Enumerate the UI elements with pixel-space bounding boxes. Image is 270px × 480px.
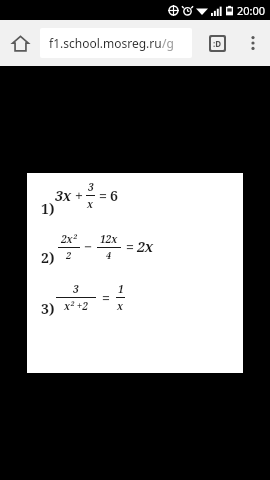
staticText: 3 — [73, 282, 79, 296]
staticText: 3x — [55, 186, 72, 205]
staticText: = — [99, 186, 107, 205]
staticText: 4 — [106, 249, 112, 261]
staticText: − — [84, 237, 93, 256]
staticText: 2x² — [61, 232, 77, 246]
button[interactable]: More options — [236, 26, 270, 60]
button[interactable]: Tabs — [198, 24, 236, 62]
staticText: 2) — [41, 248, 55, 267]
staticText: 20:00 — [237, 3, 266, 18]
staticText: 3 — [88, 180, 94, 194]
staticText: 12x — [100, 232, 118, 246]
staticText: 6 — [110, 186, 118, 205]
button[interactable]: f1.school.mosreg.ru — [40, 28, 192, 58]
staticText: f1.school.mosreg.ru — [49, 35, 162, 51]
staticText: :D — [213, 38, 222, 49]
staticText: = — [126, 237, 134, 256]
staticText: + — [75, 186, 83, 205]
staticText: x — [117, 299, 124, 313]
staticText: 1 — [118, 282, 124, 296]
staticText: 2 — [66, 249, 72, 261]
staticText: x — [87, 197, 94, 211]
staticText: 3) — [41, 299, 55, 318]
staticText: x² +2 — [64, 299, 88, 313]
staticText: 1) — [41, 199, 55, 218]
staticText: 2x — [137, 237, 154, 256]
staticText: = — [102, 288, 110, 307]
staticText: /g — [162, 35, 174, 51]
button[interactable]: Home — [0, 23, 40, 63]
